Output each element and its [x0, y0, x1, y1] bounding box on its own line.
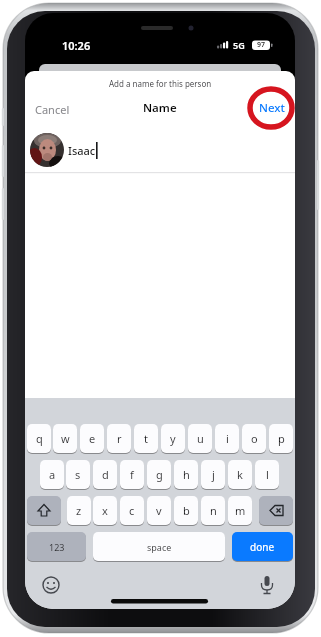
button[interactable]: f [120, 460, 144, 489]
button[interactable]: d [93, 460, 117, 489]
staticText: c [129, 503, 135, 518]
button[interactable]: t [134, 424, 158, 453]
staticText: done [250, 540, 275, 554]
staticText: f [130, 467, 134, 482]
button[interactable]: Cancel [29, 101, 75, 117]
staticText: h [183, 467, 190, 482]
button[interactable]: s [66, 460, 90, 489]
staticText: p [278, 431, 285, 446]
button[interactable]: 123 [27, 532, 86, 561]
button[interactable]: i [215, 424, 239, 453]
button[interactable]: l [255, 460, 279, 489]
staticText: g [156, 467, 163, 482]
staticText: Add a name for this person [109, 78, 212, 89]
staticText: Next [259, 100, 285, 116]
staticText: j [212, 467, 215, 482]
staticText: Isaac [68, 143, 96, 158]
button[interactable]: r [107, 424, 131, 453]
staticText: i [226, 431, 229, 446]
staticText: space [147, 541, 172, 553]
staticText: n [210, 503, 217, 518]
staticText: 10:26 [62, 38, 91, 53]
button[interactable]: c [120, 496, 144, 525]
staticText: t [144, 431, 148, 446]
button[interactable]: h [174, 460, 198, 489]
button[interactable]: space [93, 532, 225, 561]
button[interactable]: m [228, 496, 252, 525]
button[interactable]: o [242, 424, 266, 453]
button[interactable]: n [201, 496, 225, 525]
staticText: Cancel [35, 102, 70, 117]
staticText: Name [143, 100, 177, 116]
button[interactable]: g [147, 460, 171, 489]
button[interactable] [41, 575, 61, 595]
button[interactable] [257, 574, 277, 594]
button[interactable]: x [93, 496, 117, 525]
staticText: z [76, 503, 82, 518]
button[interactable]: e [80, 424, 104, 453]
staticText: 5G [233, 39, 245, 51]
button[interactable] [30, 133, 64, 167]
button[interactable]: Isaac [68, 142, 108, 158]
staticText: x [102, 503, 108, 518]
button[interactable]: k [228, 460, 252, 489]
staticText: r [117, 431, 122, 446]
button[interactable]: done [232, 532, 293, 561]
button[interactable]: b [174, 496, 198, 525]
button[interactable]: a [40, 460, 64, 489]
button[interactable]: u [188, 424, 212, 453]
button[interactable]: j [201, 460, 225, 489]
button[interactable]: z [67, 496, 91, 525]
staticText: a [49, 467, 56, 482]
staticText: u [197, 431, 204, 446]
staticText: l [266, 467, 269, 482]
button[interactable] [259, 496, 293, 525]
staticText: b [183, 503, 190, 518]
button[interactable] [27, 496, 61, 525]
button[interactable]: p [269, 424, 293, 453]
button[interactable]: y [161, 424, 185, 453]
button[interactable]: q [27, 424, 51, 453]
button[interactable]: v [147, 496, 171, 525]
staticText: s [75, 467, 81, 482]
staticText: 97 [257, 40, 266, 50]
button[interactable]: Next [249, 100, 295, 116]
staticText: y [170, 431, 176, 446]
staticText: m [235, 503, 246, 518]
staticText: e [89, 431, 96, 446]
staticText: w [61, 431, 70, 446]
staticText: 123 [49, 541, 65, 553]
staticText: k [237, 467, 243, 482]
staticText: o [251, 431, 258, 446]
staticText: v [156, 503, 162, 518]
staticText: q [36, 431, 43, 446]
staticText: d [102, 467, 109, 482]
button[interactable]: w [53, 424, 77, 453]
